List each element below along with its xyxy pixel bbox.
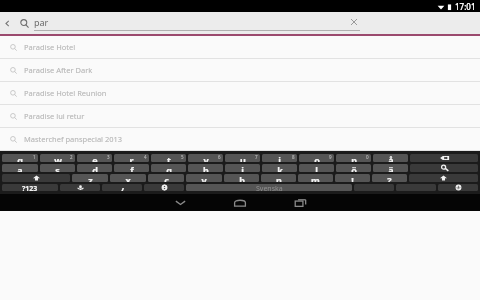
staticText: e [92, 154, 98, 162]
staticText: 4 [144, 154, 147, 160]
button[interactable]: Paradise Hotel Reunion [0, 82, 480, 104]
staticText: w [54, 154, 62, 162]
button[interactable]: Clear [348, 16, 360, 28]
staticText: par [34, 16, 348, 28]
button[interactable]: Masterchef panspecial 2013 [0, 128, 480, 150]
staticText: ? [387, 174, 392, 182]
button[interactable]: r [114, 154, 149, 162]
button[interactable]: Shift [2, 174, 70, 182]
button[interactable]: q [2, 154, 38, 162]
button[interactable]: ?123 [2, 184, 58, 191]
staticText: 8 [292, 154, 295, 160]
button[interactable]: Emoji [438, 184, 478, 191]
button[interactable]: y [188, 154, 223, 162]
button[interactable]: x [110, 174, 146, 182]
button[interactable]: t [151, 154, 186, 162]
staticText: å [388, 154, 394, 162]
staticText: Paradise Hotel Reunion [24, 88, 107, 98]
staticText: f [130, 164, 134, 172]
button[interactable]: Paradise After Dark [0, 59, 480, 81]
button[interactable]: ä [373, 164, 408, 172]
button[interactable]: f [114, 164, 149, 172]
staticText: o [314, 154, 320, 162]
button[interactable]: v [186, 174, 222, 182]
button[interactable]: Paradise Hotel [0, 36, 480, 58]
button[interactable]: Home [210, 194, 270, 211]
button[interactable]: p [336, 154, 371, 162]
staticText: Paradise lui retur [24, 111, 85, 121]
staticText: v [201, 174, 207, 182]
button[interactable]: Voice input [60, 184, 100, 191]
staticText: j [241, 164, 244, 172]
staticText: 17:01 [455, 1, 476, 12]
button[interactable]: Back [150, 194, 210, 211]
button[interactable]: s [40, 164, 75, 172]
button[interactable]: a [2, 164, 38, 172]
staticText: Masterchef panspecial 2013 [24, 134, 123, 144]
button[interactable]: l [299, 164, 334, 172]
button[interactable]: Shift [409, 174, 478, 182]
staticText: p [351, 154, 357, 162]
button[interactable]: Back [0, 12, 14, 34]
button[interactable]: z [72, 174, 108, 182]
button[interactable]: o [299, 154, 334, 162]
staticText: t [167, 154, 171, 162]
staticText: k [277, 164, 283, 172]
button[interactable]: Search [14, 12, 34, 34]
button[interactable]: n [261, 174, 296, 182]
button[interactable]: Search [410, 164, 478, 172]
button[interactable]: Recent apps [270, 194, 330, 211]
button[interactable]: ! [335, 174, 370, 182]
staticText: x [125, 174, 131, 182]
staticText: d [92, 164, 98, 172]
button[interactable]: e [77, 154, 112, 162]
staticText: l [315, 164, 318, 172]
staticText: 7 [255, 154, 258, 160]
button[interactable]: Change language [144, 184, 184, 191]
staticText: Svenska [256, 184, 283, 191]
button[interactable]: h [188, 164, 223, 172]
staticText: a [17, 164, 23, 172]
staticText: h [203, 164, 209, 172]
button[interactable]: å [373, 154, 408, 162]
staticText: q [17, 154, 23, 162]
staticText: / [120, 184, 124, 191]
button[interactable]: c [148, 174, 184, 182]
staticText: 3 [107, 154, 110, 160]
button[interactable]: b [224, 174, 259, 182]
staticText: 2 [70, 154, 73, 160]
staticText: Paradise Hotel [24, 42, 76, 52]
button[interactable]: m [298, 174, 333, 182]
staticText: 0 [366, 154, 369, 160]
button[interactable]: / [102, 184, 142, 191]
staticText: b [239, 174, 245, 182]
staticText: u [240, 154, 246, 162]
button[interactable]: j [225, 164, 260, 172]
button[interactable]: g [151, 164, 186, 172]
button[interactable]: Paradise lui retur [0, 105, 480, 127]
button[interactable]: k [262, 164, 297, 172]
staticText: Paradise After Dark [24, 65, 93, 75]
button[interactable]: ö [336, 164, 371, 172]
staticText: 9 [329, 154, 332, 160]
staticText: 6 [218, 154, 221, 160]
staticText: c [164, 174, 169, 182]
button[interactable]: w [40, 154, 75, 162]
button[interactable]: Svenska [186, 184, 352, 191]
staticText: ö [351, 164, 357, 172]
button[interactable]: ? [372, 174, 407, 182]
button[interactable]: i [262, 154, 297, 162]
staticText: s [55, 164, 60, 172]
staticText: m [311, 174, 320, 182]
staticText: 1 [33, 154, 36, 160]
staticText: ! [351, 174, 354, 182]
staticText: i [278, 154, 281, 162]
button[interactable]: d [77, 164, 112, 172]
staticText: n [276, 174, 282, 182]
button[interactable]: Backspace [410, 154, 478, 162]
button[interactable]: u [225, 154, 260, 162]
staticText: ?123 [22, 184, 38, 191]
